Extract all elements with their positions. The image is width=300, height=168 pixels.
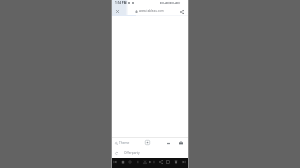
staticText: 1:14 PM <box>115 1 127 5</box>
button[interactable]: Record <box>127 159 133 165</box>
button[interactable]: Home <box>178 140 184 146</box>
button[interactable]: Next <box>181 159 187 165</box>
staticText: www.tableau.com <box>139 9 164 13</box>
button[interactable]: Theme <box>115 141 130 145</box>
staticText: Theme <box>119 141 130 145</box>
button[interactable]: Cut <box>142 159 148 165</box>
button[interactable]: Lens <box>144 139 151 146</box>
button[interactable]: Share <box>177 7 186 16</box>
button[interactable]: Home <box>120 159 126 165</box>
button[interactable]: Offerparty <box>112 149 188 158</box>
button[interactable]: Tabs <box>165 140 171 146</box>
button[interactable]: www.tableau.com <box>135 9 164 13</box>
button[interactable]: Share <box>158 159 164 165</box>
button[interactable]: Previous <box>112 159 118 165</box>
staticText: Offerparty <box>124 151 140 155</box>
button[interactable]: Marker <box>135 159 141 165</box>
button[interactable]: Crop <box>165 159 171 165</box>
button[interactable]: Delete <box>173 159 179 165</box>
button[interactable]: Close <box>113 7 122 16</box>
button[interactable]: Play <box>147 159 153 165</box>
button[interactable]: Marker end <box>151 159 157 165</box>
